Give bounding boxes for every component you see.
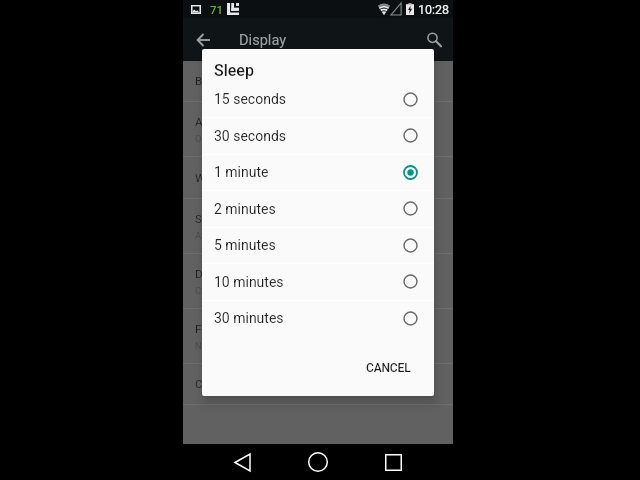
button[interactable]: Recents: [373, 444, 413, 480]
button[interactable]: Font size: [183, 309, 453, 364]
staticText: Clock: [195, 285, 219, 296]
staticText: Wallpaper: [195, 171, 247, 185]
button[interactable]: Wallpaper: [183, 157, 453, 199]
staticText: Sleep: [214, 61, 254, 80]
staticText: 2 minutes: [214, 201, 276, 217]
staticText: 1 minute: [214, 164, 269, 180]
button[interactable]: 15 seconds: [202, 81, 434, 117]
button[interactable]: 2 minutes: [202, 190, 434, 227]
staticText: 71: [210, 3, 223, 16]
button[interactable]: Adaptive brightness: [183, 102, 453, 157]
button[interactable]: 5 minutes: [202, 227, 434, 263]
button[interactable]: Sleep: [183, 199, 453, 254]
staticText: 5 minutes: [214, 237, 276, 253]
button[interactable]: Back: [222, 444, 262, 480]
staticText: Font size: [195, 322, 242, 336]
staticText: Adaptive brightness: [195, 115, 299, 129]
button[interactable]: Daydream: [183, 254, 453, 309]
staticText: Daydream: [195, 267, 248, 281]
button[interactable]: Back: [183, 18, 224, 61]
staticText: Normal: [195, 340, 227, 351]
button[interactable]: Brightness level: [183, 61, 453, 102]
staticText: 15 seconds: [214, 91, 287, 107]
staticText: Optimize brightness level for available …: [195, 133, 376, 144]
button[interactable]: CANCEL: [357, 353, 420, 383]
staticText: Cast: [195, 377, 219, 391]
staticText: 10:28: [418, 2, 450, 17]
button[interactable]: 30 seconds: [202, 117, 434, 154]
button[interactable]: Cast: [183, 364, 453, 405]
button[interactable]: 1 minute: [202, 154, 434, 190]
button[interactable]: Home: [298, 444, 338, 480]
button[interactable]: Search: [417, 18, 453, 61]
staticText: Sleep: [195, 212, 224, 226]
staticText: CANCEL: [366, 361, 411, 375]
staticText: After 1 minute of inactivity: [195, 230, 307, 241]
staticText: 30 seconds: [214, 128, 287, 144]
staticText: 10 minutes: [214, 274, 284, 290]
staticText: Brightness level: [195, 74, 278, 88]
staticText: 30 minutes: [214, 310, 284, 326]
button[interactable]: 10 minutes: [202, 263, 434, 300]
staticText: Display: [239, 31, 287, 48]
button[interactable]: 30 minutes: [202, 300, 434, 336]
